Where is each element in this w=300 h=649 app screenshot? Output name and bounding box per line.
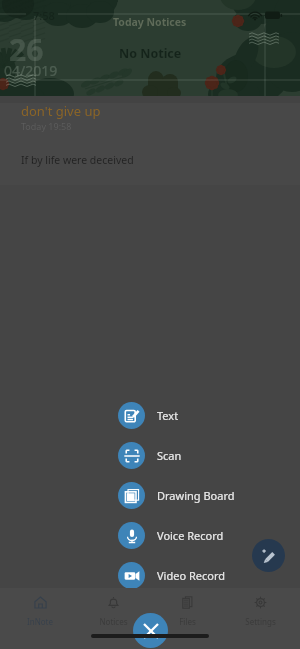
button[interactable]: Voice Record xyxy=(118,515,224,555)
staticText: 7:58 xyxy=(33,8,55,23)
staticText: Notices xyxy=(99,616,128,627)
staticText: Settings xyxy=(245,616,276,627)
staticText: 26 xyxy=(9,29,44,70)
staticText: Voice Record xyxy=(157,528,224,543)
staticText: Files xyxy=(179,616,196,627)
staticText: No Notice xyxy=(119,45,182,62)
staticText: Today Notices xyxy=(113,15,187,29)
staticText: Text xyxy=(157,408,179,423)
staticText: Drawing Board xyxy=(157,488,235,503)
staticText: don't give up xyxy=(21,102,101,120)
button[interactable]: Theme xyxy=(252,539,285,572)
button[interactable]: Files xyxy=(154,594,220,627)
staticText: Today 19:58 xyxy=(21,120,72,132)
button[interactable]: Video Record xyxy=(118,555,225,595)
button[interactable]: Drawing Board xyxy=(118,475,235,515)
staticText: Video Record xyxy=(157,568,225,583)
button[interactable]: don't give up xyxy=(0,103,300,185)
button[interactable]: Close xyxy=(133,613,168,648)
staticText: Scan xyxy=(157,448,182,463)
button[interactable]: Scan xyxy=(118,435,182,475)
button[interactable]: InNote xyxy=(7,594,73,627)
button[interactable]: Notices xyxy=(80,594,146,627)
button[interactable]: Text xyxy=(118,395,179,435)
staticText: If by life were deceived xyxy=(21,153,134,167)
staticText: 04/2019 xyxy=(4,61,58,80)
staticText: InNote xyxy=(27,616,53,627)
